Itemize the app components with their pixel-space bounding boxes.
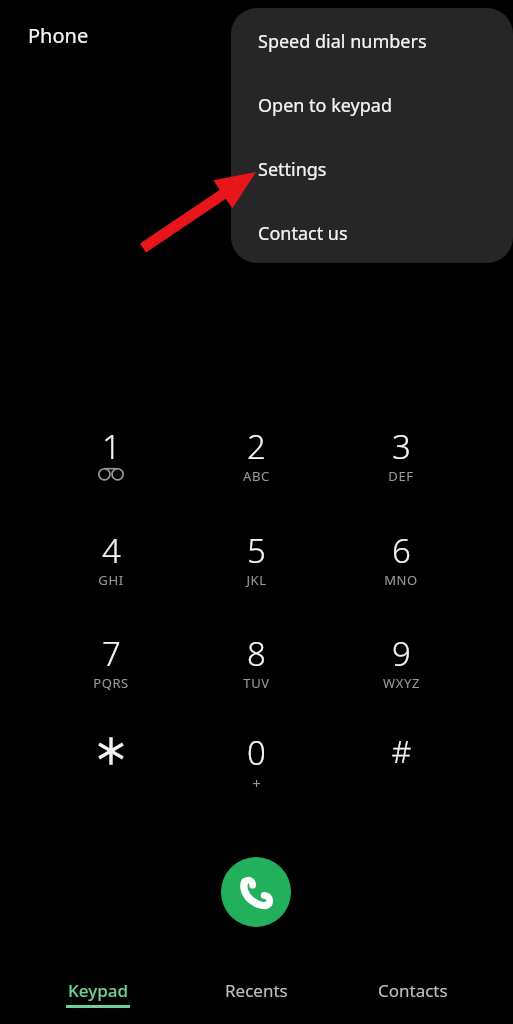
staticText: 5 xyxy=(247,528,266,570)
button[interactable]: Phone xyxy=(28,22,89,49)
staticText: PQRS xyxy=(93,674,129,692)
button[interactable]: Open to keypad xyxy=(231,83,513,127)
button[interactable]: 9 xyxy=(341,631,461,727)
button[interactable]: 3 xyxy=(341,424,461,520)
staticText: Keypad xyxy=(68,979,128,1002)
staticText: JKL xyxy=(246,571,267,589)
staticText: 7 xyxy=(102,631,121,673)
staticText: 3 xyxy=(392,424,411,466)
staticText: 0 xyxy=(247,730,266,772)
button[interactable]: Contacts xyxy=(343,962,483,1024)
staticText: Speed dial numbers xyxy=(258,29,427,54)
staticText: Contact us xyxy=(258,221,348,246)
staticText: 8 xyxy=(247,631,266,673)
staticText: 1 xyxy=(102,424,121,466)
button[interactable]: 4 xyxy=(51,528,171,624)
staticText: 9 xyxy=(392,631,411,673)
staticText: # xyxy=(391,730,412,772)
staticText: + xyxy=(252,773,261,793)
button[interactable]: 0 xyxy=(196,730,316,826)
staticText: MNO xyxy=(384,571,418,589)
button[interactable]: 6 xyxy=(341,528,461,624)
staticText: DEF xyxy=(388,467,414,485)
staticText: Contacts xyxy=(378,979,448,1002)
staticText: 4 xyxy=(102,528,121,570)
button[interactable]: 7 xyxy=(51,631,171,727)
button[interactable]: Keypad xyxy=(28,962,168,1024)
staticText: GHI xyxy=(98,571,124,589)
staticText: Recents xyxy=(225,979,288,1002)
staticText: 6 xyxy=(392,528,411,570)
staticText: WXYZ xyxy=(383,674,420,692)
staticText: Settings xyxy=(258,157,327,182)
staticText: Phone xyxy=(28,22,89,49)
button[interactable]: Recents xyxy=(186,962,326,1024)
button[interactable]: star xyxy=(51,730,171,826)
button[interactable]: 5 xyxy=(196,528,316,624)
button[interactable]: 2 xyxy=(196,424,316,520)
button[interactable]: Settings xyxy=(231,147,513,191)
staticText: 2 xyxy=(247,424,266,466)
button[interactable]: pound xyxy=(341,730,461,826)
staticText: TUV xyxy=(243,674,270,692)
button[interactable]: 1 xyxy=(51,424,171,520)
staticText: ABC xyxy=(243,467,270,485)
button[interactable]: Contact us xyxy=(231,211,513,255)
button[interactable]: Speed dial numbers xyxy=(231,19,513,63)
staticText: Open to keypad xyxy=(258,93,392,118)
button[interactable]: 8 xyxy=(196,631,316,727)
button[interactable]: Call xyxy=(221,857,291,927)
